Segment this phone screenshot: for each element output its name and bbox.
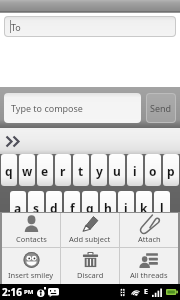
staticText: p (167, 163, 175, 179)
staticText: All threads (130, 270, 168, 280)
staticText: s (33, 200, 40, 216)
staticText: q (5, 163, 13, 179)
staticText: PM (24, 288, 34, 296)
button[interactable]: d (46, 191, 62, 223)
button[interactable]: Contacts (2, 213, 60, 247)
button[interactable]: w (19, 154, 35, 186)
button[interactable]: j (118, 191, 134, 223)
button[interactable]: i (127, 154, 143, 186)
button[interactable]: l (154, 191, 170, 223)
staticText: o (149, 163, 157, 179)
staticText: t (78, 163, 84, 179)
staticText: j (124, 200, 128, 216)
staticText: E (144, 287, 148, 297)
button[interactable]: r (55, 154, 71, 186)
button[interactable]: g (82, 191, 98, 223)
button[interactable]: All threads (120, 248, 178, 284)
button[interactable]: Add subject (61, 213, 119, 247)
button[interactable]: t (73, 154, 89, 186)
staticText: i (133, 163, 137, 179)
button[interactable]: f (64, 191, 80, 223)
staticText: 2:16 (2, 285, 22, 299)
button[interactable]: a (10, 191, 26, 223)
staticText: l (160, 200, 164, 216)
button[interactable]: Send (147, 94, 175, 122)
staticText: Add subject (69, 234, 111, 244)
button[interactable]: Insert smiley (2, 248, 60, 284)
staticText: w (22, 163, 33, 179)
staticText: y (96, 163, 103, 179)
button[interactable]: k (136, 191, 152, 223)
button[interactable]: h (100, 191, 116, 223)
staticText: k (140, 200, 148, 216)
staticText: f (70, 200, 75, 216)
staticText: u (113, 163, 121, 179)
button[interactable]: p (163, 154, 179, 186)
staticText: Insert smiley (8, 270, 54, 280)
staticText: Attach (138, 234, 161, 244)
button[interactable]: Discard (61, 248, 119, 284)
staticText: Contacts (16, 234, 47, 244)
staticText: h (104, 200, 112, 216)
staticText: e (41, 163, 49, 179)
staticText: d (50, 200, 58, 216)
button[interactable]: e (37, 154, 53, 186)
button[interactable]: u (109, 154, 125, 186)
staticText: Send (150, 102, 172, 114)
staticText: Type to compose (11, 102, 83, 114)
button[interactable]: s (28, 191, 44, 223)
staticText: r (60, 163, 66, 179)
staticText: a (14, 200, 22, 216)
button[interactable]: More suggestions (0, 128, 180, 154)
staticText: To (11, 21, 21, 33)
button[interactable]: o (145, 154, 161, 186)
button[interactable]: Type to compose (4, 93, 141, 123)
button[interactable]: Attach (120, 213, 178, 247)
button[interactable]: To (5, 17, 175, 36)
staticText: Discard (77, 270, 104, 280)
button[interactable]: q (1, 154, 17, 186)
button[interactable]: y (91, 154, 107, 186)
staticText: g (86, 200, 94, 216)
